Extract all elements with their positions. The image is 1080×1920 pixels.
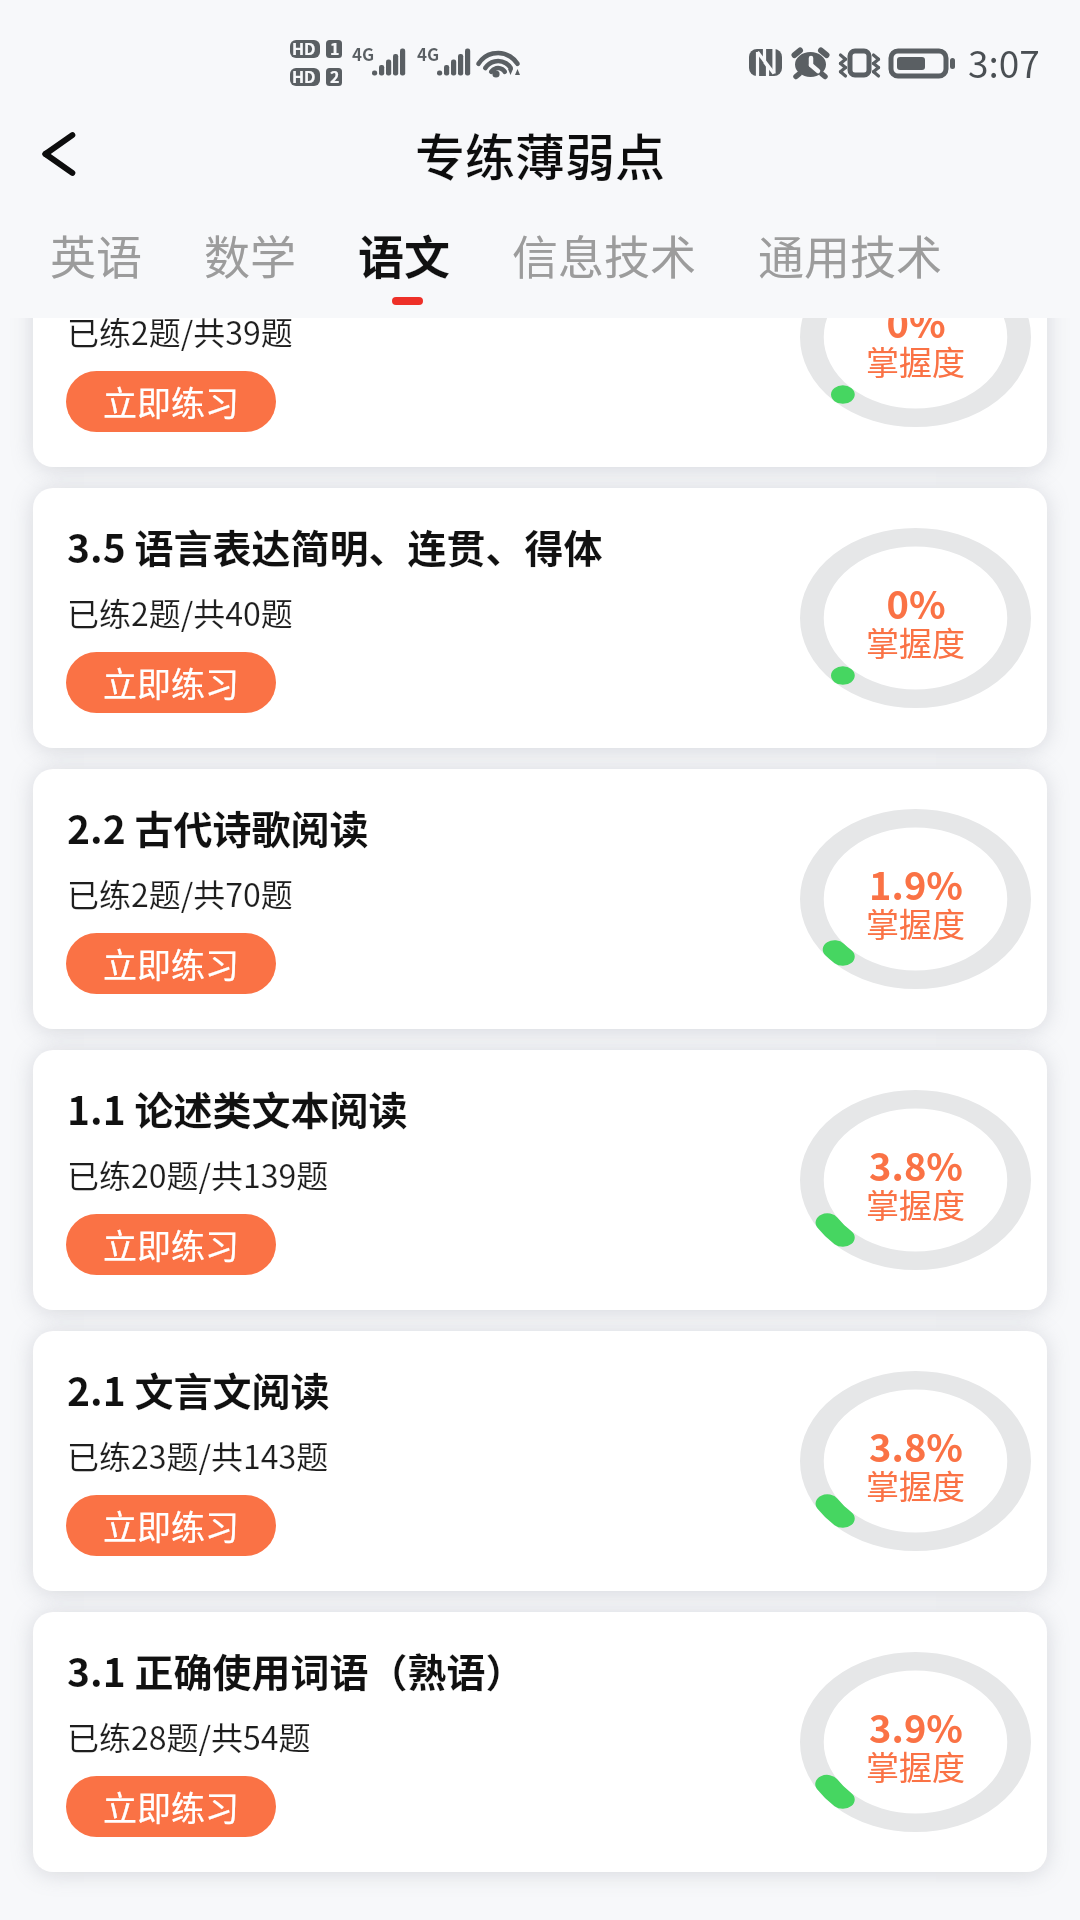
staticText: 0%	[886, 294, 946, 349]
staticText: 2.1 文言文阅读	[67, 1361, 330, 1417]
button[interactable]: 3.5 语言表达简明、连贯、得体	[33, 488, 1047, 748]
staticText: 3.5 语言表达简明、连贯、得体	[67, 518, 603, 574]
staticText: 专练薄弱点	[415, 118, 665, 190]
button[interactable]: 立即练习	[66, 933, 276, 994]
staticText: 语文	[358, 221, 450, 288]
staticText: 4G	[352, 41, 375, 66]
staticText: 3.8%	[869, 1418, 963, 1473]
staticText: 立即练习	[103, 377, 239, 426]
button[interactable]: 立即练习	[66, 1495, 276, 1556]
button[interactable]: 数学	[204, 221, 296, 305]
button[interactable]: 2.1 文言文阅读	[33, 1331, 1047, 1591]
staticText: 立即练习	[103, 1220, 239, 1269]
staticText: 掌握度	[866, 1461, 965, 1509]
staticText: 已练2题/共39题	[67, 308, 293, 354]
staticText: 掌握度	[866, 899, 965, 947]
staticText: 0%	[886, 575, 946, 630]
button[interactable]: 2.2 古代诗歌阅读	[33, 769, 1047, 1029]
button[interactable]: 语文	[358, 221, 450, 305]
staticText: 2.2 古代诗歌阅读	[67, 799, 369, 855]
staticText: 立即练习	[103, 658, 239, 707]
staticText: 3.4 语言表达准确、鲜明	[67, 237, 486, 293]
staticText: 已练2题/共70题	[67, 870, 293, 916]
button[interactable]: 3.4 语言表达准确、鲜明	[33, 207, 1047, 467]
staticText: HD	[292, 36, 316, 59]
staticText: 立即练习	[103, 1782, 239, 1831]
staticText: 通用技术	[758, 221, 942, 288]
staticText: HD	[292, 64, 316, 87]
button[interactable]: 英语	[50, 221, 142, 305]
button[interactable]: 立即练习	[66, 371, 276, 432]
staticText: 掌握度	[866, 1180, 965, 1228]
staticText: 已练23题/共143题	[67, 1432, 329, 1478]
button[interactable]: 3.1 正确使用词语（熟语）	[33, 1612, 1047, 1872]
staticText: 3.1 正确使用词语（熟语）	[67, 1642, 525, 1698]
staticText: 英语	[50, 221, 142, 288]
button[interactable]: 立即练习	[66, 1776, 276, 1837]
staticText: 已练28题/共54题	[67, 1713, 311, 1759]
staticText: 1	[330, 36, 340, 59]
button[interactable]: 信息技术	[512, 221, 696, 305]
staticText: 立即练习	[103, 939, 239, 988]
button[interactable]: 立即练习	[66, 652, 276, 713]
button[interactable]: Back	[16, 110, 104, 198]
staticText: 3.9%	[869, 1699, 963, 1754]
staticText: 1.1 论述类文本阅读	[67, 1080, 408, 1136]
staticText: 掌握度	[866, 618, 965, 666]
staticText: 掌握度	[866, 1742, 965, 1790]
staticText: 3.8%	[869, 1137, 963, 1192]
staticText: 3:07	[968, 35, 1040, 89]
staticText: 1.9%	[869, 856, 963, 911]
staticText: 信息技术	[512, 221, 696, 288]
staticText: 4G	[417, 41, 440, 66]
button[interactable]: 立即练习	[66, 1214, 276, 1275]
staticText: 已练2题/共40题	[67, 589, 293, 635]
staticText: 掌握度	[866, 337, 965, 385]
staticText: 已练20题/共139题	[67, 1151, 329, 1197]
staticText: 数学	[204, 221, 296, 288]
staticText: 2	[330, 64, 340, 87]
button[interactable]: 通用技术	[758, 221, 942, 305]
button[interactable]: 1.1 论述类文本阅读	[33, 1050, 1047, 1310]
staticText: 立即练习	[103, 1501, 239, 1550]
